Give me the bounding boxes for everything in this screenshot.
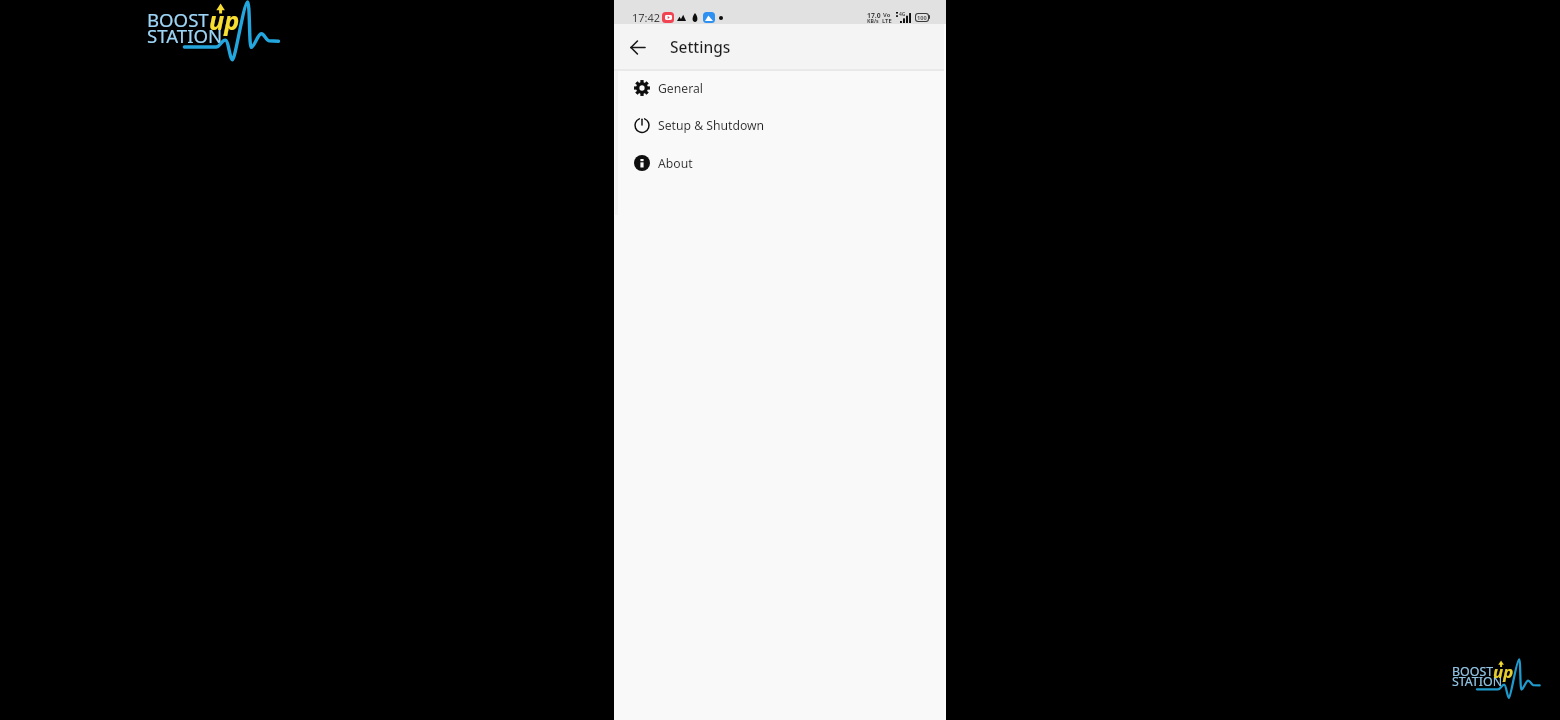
button[interactable]: Setup & Shutdown (614, 106, 946, 144)
button[interactable]: Back (614, 24, 659, 69)
staticText: STATION (147, 23, 223, 48)
staticText: up (209, 3, 240, 37)
staticText: BOOST (147, 7, 209, 32)
staticText: 17:42 (632, 10, 661, 25)
staticText: KB/s (867, 17, 879, 24)
staticText: 17.0 (867, 11, 881, 20)
staticText: Settings (670, 36, 731, 57)
staticText: 100 (917, 14, 927, 21)
staticText: LTE (882, 17, 892, 25)
staticText: General (658, 80, 703, 97)
staticText: Vo (883, 11, 891, 19)
staticText: STATION (1452, 673, 1503, 690)
button[interactable]: About (614, 144, 946, 182)
staticText: BOOST (1452, 663, 1494, 680)
staticText: up (1493, 660, 1514, 683)
staticText: About (658, 155, 693, 172)
staticText: Setup & Shutdown (658, 117, 765, 134)
button[interactable]: General (614, 69, 946, 107)
staticText: 4G (899, 11, 906, 18)
